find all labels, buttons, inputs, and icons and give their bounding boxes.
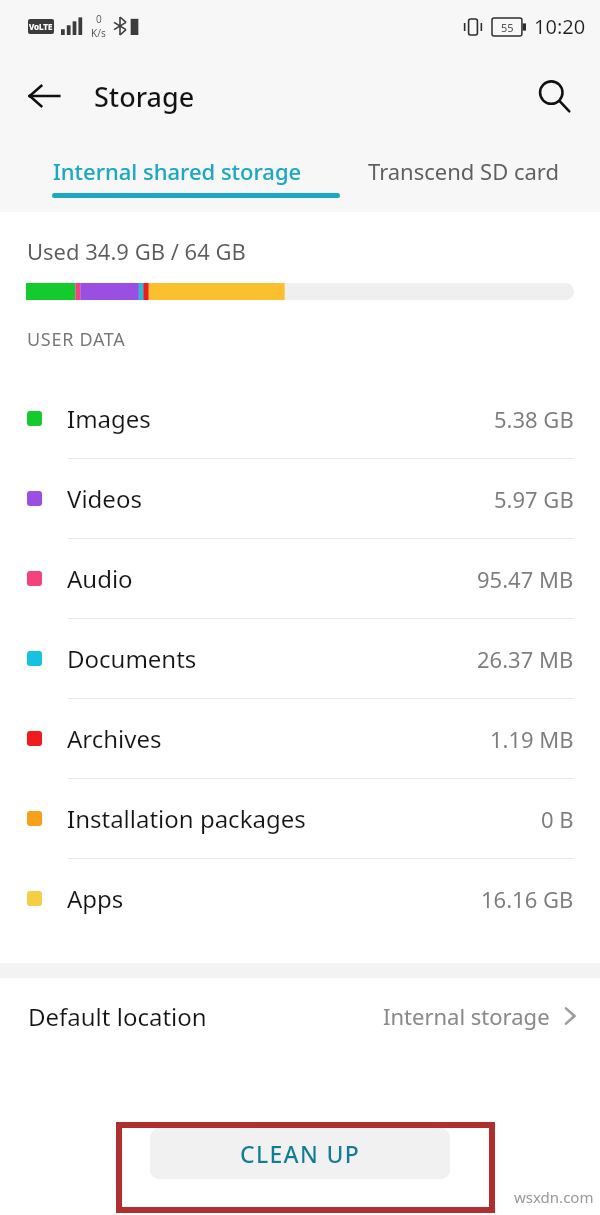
staticText: Storage: [94, 78, 195, 115]
staticText: Archives: [67, 722, 162, 755]
staticText: 55: [501, 20, 514, 35]
staticText: 1.19 MB: [490, 724, 574, 754]
button[interactable]: Default location: [0, 978, 600, 1054]
staticText: Audio: [67, 562, 133, 595]
button[interactable]: Images: [0, 379, 600, 458]
button[interactable]: Transcend SD card: [340, 140, 600, 212]
staticText: K/s: [91, 26, 106, 40]
button[interactable]: Installation packages: [0, 779, 600, 858]
staticText: CLEAN UP: [240, 1138, 360, 1169]
button[interactable]: Back: [16, 68, 72, 124]
button[interactable]: Apps: [0, 859, 600, 938]
staticText: Transcend SD card: [368, 156, 560, 186]
staticText: Installation packages: [67, 802, 306, 835]
staticText: Used 34.9 GB / 64 GB: [27, 236, 246, 266]
staticText: Documents: [67, 642, 197, 675]
staticText: Internal shared storage: [53, 156, 302, 186]
button[interactable]: CLEAN UP: [150, 1128, 450, 1179]
button[interactable]: Documents: [0, 619, 600, 698]
staticText: 5.38 GB: [494, 404, 574, 434]
button[interactable]: Videos: [0, 459, 600, 538]
staticText: 0: [96, 12, 102, 26]
button[interactable]: Search: [526, 68, 582, 124]
staticText: 16.16 GB: [481, 884, 574, 914]
staticText: 0 B: [541, 804, 574, 834]
button[interactable]: Internal shared storage: [0, 140, 340, 212]
staticText: 95.47 MB: [477, 564, 574, 594]
staticText: 5.97 GB: [494, 484, 574, 514]
button[interactable]: Archives: [0, 699, 600, 778]
staticText: VoLTE: [29, 21, 53, 32]
staticText: Apps: [67, 882, 124, 915]
staticText: Videos: [67, 482, 142, 515]
staticText: Default location: [28, 1000, 207, 1033]
staticText: Internal storage: [383, 1001, 550, 1031]
staticText: 26.37 MB: [477, 644, 574, 674]
staticText: USER DATA: [27, 327, 126, 352]
staticText: wsxdn.com: [514, 1187, 594, 1207]
staticText: Images: [67, 402, 151, 435]
staticText: 10:20: [534, 13, 586, 40]
button[interactable]: Audio: [0, 539, 600, 618]
